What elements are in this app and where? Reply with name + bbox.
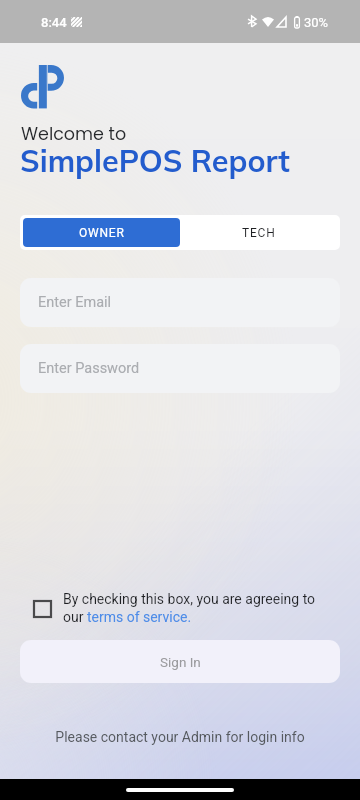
staticText: Welcome to <box>21 122 127 147</box>
button[interactable]: TECH <box>180 218 337 247</box>
staticText: TECH <box>242 226 276 240</box>
button[interactable]: Enter Email <box>20 278 340 327</box>
button[interactable]: Sign In <box>20 640 340 683</box>
staticText: 30% <box>304 15 329 30</box>
button[interactable]: Agree to terms of service checkbox <box>34 601 51 617</box>
staticText: By checking this box, you are agreeing t… <box>63 591 320 626</box>
staticText: Sign In <box>160 654 201 670</box>
button[interactable]: Enter Password <box>20 344 340 393</box>
staticText: Enter Email <box>38 294 112 311</box>
staticText: 8:44 <box>41 15 67 30</box>
button[interactable]: OWNER <box>23 218 180 247</box>
other: Bluetooth <box>248 16 256 27</box>
staticText: OWNER <box>79 226 125 240</box>
staticText: Enter Password <box>38 360 140 377</box>
staticText: SimplePOS Report <box>20 141 290 179</box>
staticText: Please contact your Admin for login info <box>0 729 360 745</box>
